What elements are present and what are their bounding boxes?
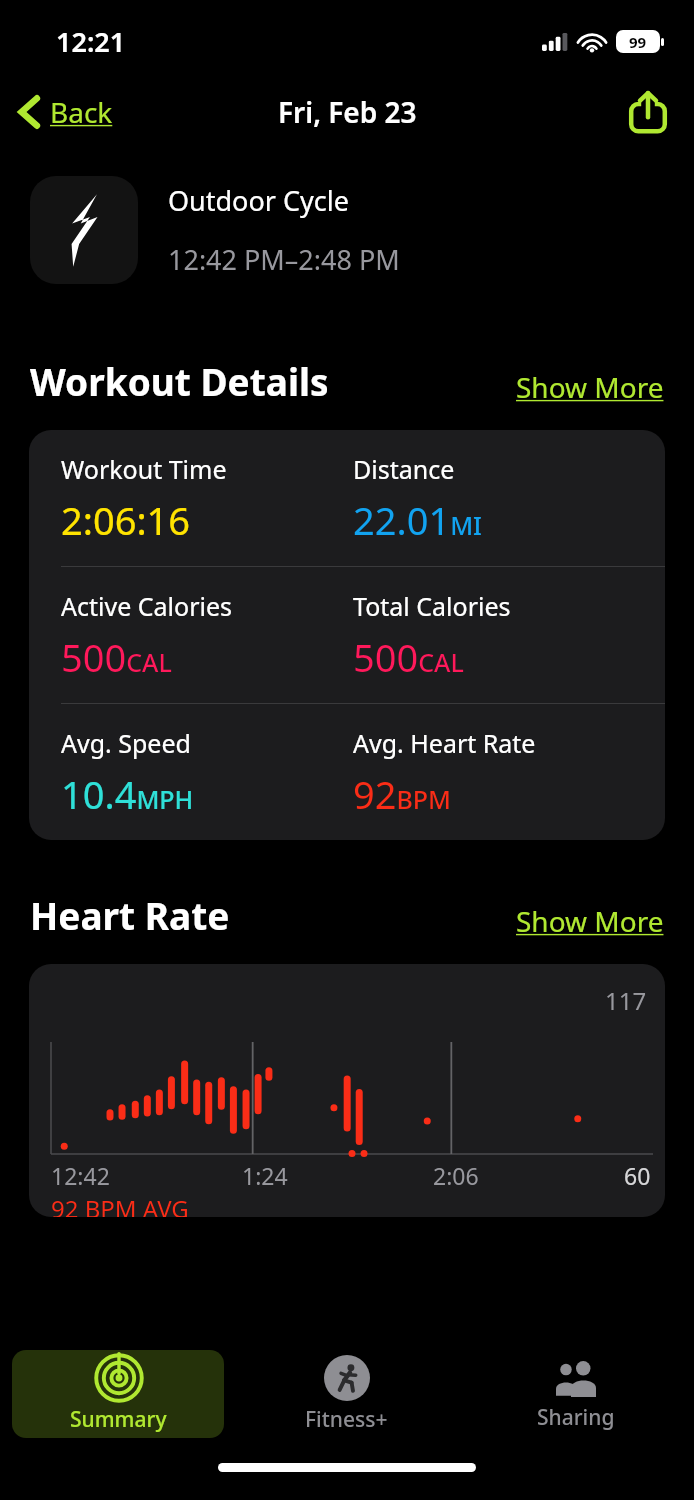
staticText: 500CAL bbox=[61, 631, 172, 683]
staticText: Workout Details bbox=[30, 356, 329, 406]
staticText: Back bbox=[50, 93, 113, 131]
staticText: 500CAL bbox=[353, 631, 464, 683]
staticText: Summary bbox=[70, 1405, 167, 1434]
button[interactable]: Fitness+ bbox=[232, 1350, 461, 1438]
button[interactable]: Summary bbox=[12, 1350, 224, 1438]
staticText: 117 bbox=[605, 984, 647, 1017]
staticText: Avg. Heart Rate bbox=[353, 726, 536, 760]
staticText: Heart Rate bbox=[30, 890, 230, 940]
staticText: 60 bbox=[624, 1160, 651, 1191]
button[interactable]: Active Calories bbox=[29, 567, 665, 703]
staticText: Avg. Speed bbox=[61, 726, 191, 760]
staticText: 12:42 PM–2:48 PM bbox=[168, 241, 400, 278]
staticText: 92BPM bbox=[353, 768, 452, 820]
staticText: Total Calories bbox=[353, 589, 511, 623]
staticText: Sharing bbox=[537, 1403, 615, 1432]
staticText: 22.01MI bbox=[353, 494, 482, 546]
staticText: Fri, Feb 23 bbox=[278, 93, 417, 131]
button[interactable]: Sharing bbox=[461, 1350, 690, 1438]
staticText: Distance bbox=[353, 452, 455, 486]
button[interactable]: Share bbox=[620, 82, 676, 142]
staticText: Show More bbox=[516, 368, 664, 406]
staticText: Fitness+ bbox=[305, 1405, 388, 1434]
button[interactable]: Show More bbox=[516, 902, 664, 940]
button[interactable]: Avg. Speed bbox=[29, 704, 665, 840]
staticText: Workout Time bbox=[61, 452, 227, 486]
button[interactable]: Back bbox=[10, 87, 121, 137]
button[interactable]: Show More bbox=[516, 368, 664, 406]
staticText: 12:42 bbox=[51, 1160, 242, 1191]
staticText: Outdoor Cycle bbox=[168, 182, 349, 219]
staticText: 99 bbox=[629, 32, 647, 52]
staticText: 2:06 bbox=[433, 1160, 624, 1191]
staticText: 12:21 bbox=[56, 23, 126, 60]
staticText: 92 BPM AVG bbox=[51, 1192, 189, 1217]
staticText: 10.4MPH bbox=[61, 768, 194, 820]
button[interactable]: 117 bbox=[29, 964, 665, 1217]
staticText: 2:06:16 bbox=[61, 494, 191, 546]
staticText: 1:24 bbox=[242, 1160, 433, 1191]
button[interactable]: Workout Time bbox=[29, 430, 665, 566]
staticText: Show More bbox=[516, 902, 664, 940]
staticText: Active Calories bbox=[61, 589, 233, 623]
